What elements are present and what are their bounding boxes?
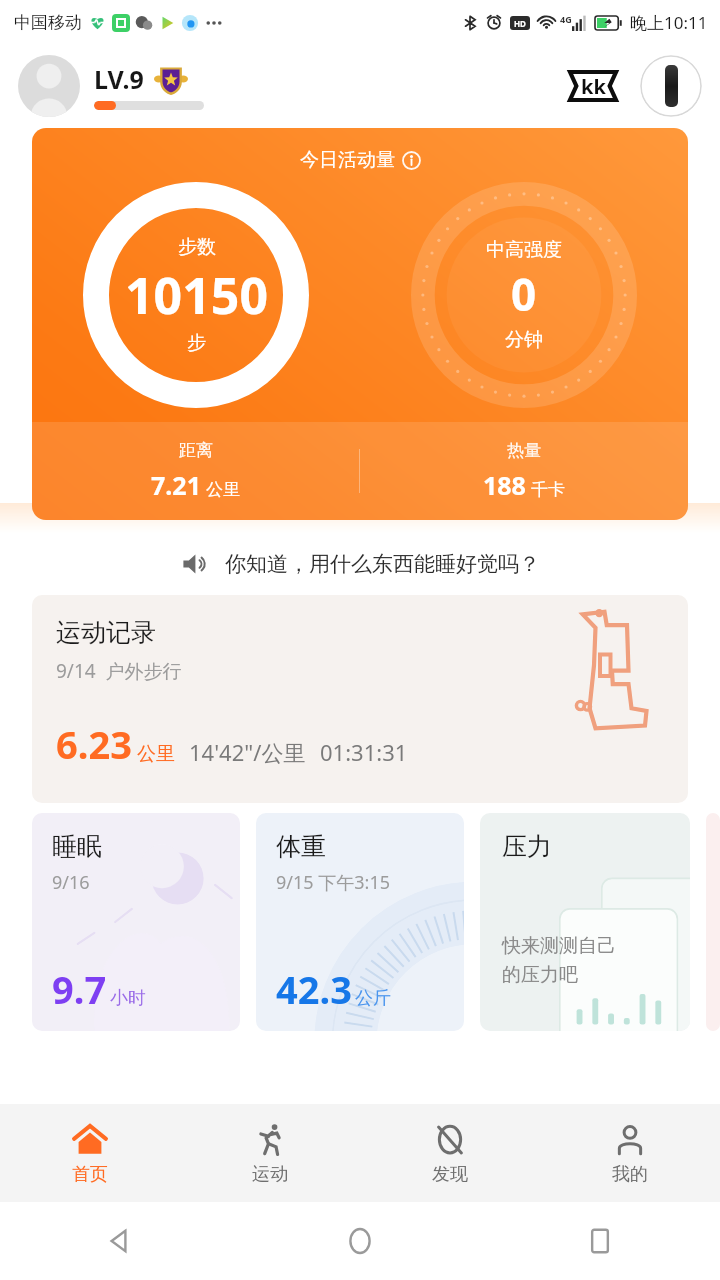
staticText: 6.23 [56, 718, 132, 770]
staticText: 7.21 [151, 468, 201, 502]
staticText: 小时 [110, 987, 146, 1010]
button[interactable]: 发现 [360, 1104, 540, 1202]
staticText: 快来测测自己 [502, 934, 616, 958]
staticText: 运动记录 [56, 617, 156, 648]
staticText: kk [581, 73, 606, 100]
staticText: 千卡 [531, 479, 565, 500]
button[interactable]: Home [240, 1202, 480, 1280]
button[interactable]: 运动 [180, 1104, 360, 1202]
staticText: 睡眠 [52, 831, 102, 862]
staticText: 运动 [252, 1163, 288, 1186]
staticText: 14'42"/公里 [189, 737, 306, 767]
staticText: 分钟 [505, 328, 543, 352]
staticText: 10150 [125, 261, 268, 329]
staticText: 热量 [507, 440, 541, 461]
staticText: 压力 [502, 831, 552, 862]
button[interactable]: kk coupons [564, 62, 622, 110]
button[interactable]: Profile avatar [18, 55, 80, 117]
staticText: 首页 [72, 1163, 108, 1186]
staticText: 体重 [276, 831, 326, 862]
staticText: 9.7 [52, 963, 107, 1015]
button[interactable]: LV.9 [94, 62, 204, 110]
staticText: HD [514, 18, 526, 29]
button[interactable]: 运动记录 [32, 595, 688, 803]
staticText: 你知道，用什么东西能睡好觉吗？ [225, 551, 540, 577]
staticText: 距离 [179, 440, 213, 461]
button[interactable]: 首页 [0, 1104, 180, 1202]
button[interactable]: My device [640, 55, 702, 117]
staticText: 步数 [178, 235, 216, 259]
staticText: 9/14 户外步行 [56, 658, 182, 684]
staticText: 的压力吧 [502, 963, 578, 987]
button[interactable]: Recents [480, 1202, 720, 1280]
button[interactable]: 今日活动量 [32, 128, 688, 520]
staticText: 公里 [206, 479, 240, 500]
staticText: 发现 [432, 1163, 468, 1186]
staticText: 我的 [612, 1163, 648, 1186]
button[interactable]: 体重 [256, 813, 464, 1031]
staticText: 9/16 [52, 870, 90, 895]
staticText: 01:31:31 [320, 737, 408, 767]
staticText: LV.9 [94, 62, 144, 96]
staticText: 42.3 [276, 963, 352, 1015]
button[interactable]: Back [0, 1202, 240, 1280]
staticText: 中高强度 [486, 238, 562, 262]
staticText: 今日活动量 [300, 148, 395, 172]
button[interactable]: 我的 [540, 1104, 720, 1202]
staticText: 4G [560, 13, 572, 25]
button[interactable]: 压力 [480, 813, 690, 1031]
staticText: 晚上10:11 [630, 11, 708, 34]
staticText: 188 [483, 468, 526, 502]
staticText: 公斤 [355, 987, 391, 1010]
staticText: 步 [187, 331, 206, 355]
button[interactable]: 睡眠 [32, 813, 240, 1031]
staticText: 0 [511, 264, 537, 324]
staticText: 9/15 下午3:15 [276, 870, 390, 895]
button[interactable]: 你知道，用什么东西能睡好觉吗？ [0, 533, 720, 595]
staticText: 中国移动 [14, 12, 82, 33]
staticText: 公里 [137, 742, 175, 766]
